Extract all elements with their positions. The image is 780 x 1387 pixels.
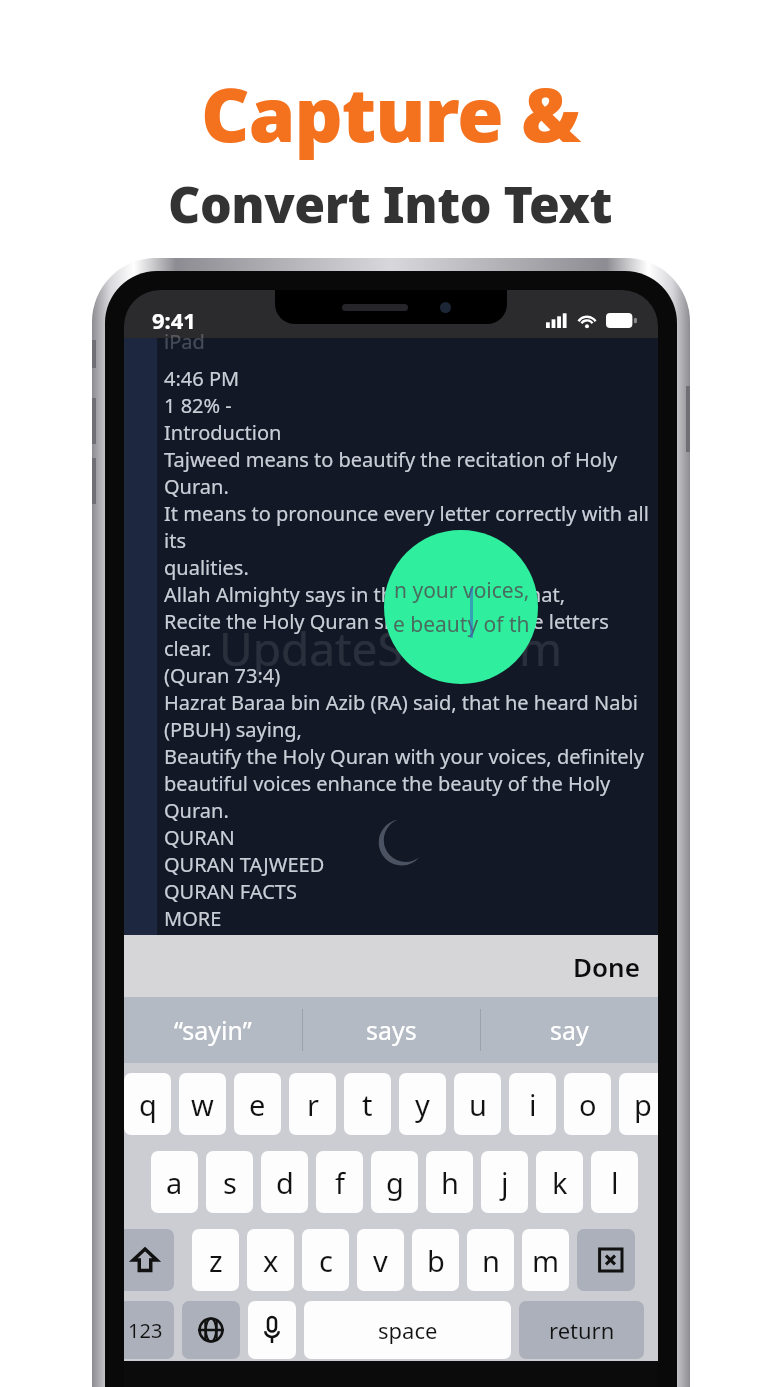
staticText: r bbox=[307, 1085, 319, 1124]
staticText: u bbox=[469, 1085, 487, 1124]
button[interactable]: q bbox=[124, 1073, 171, 1135]
staticText: Introduction bbox=[164, 419, 282, 446]
button[interactable]: l bbox=[591, 1151, 638, 1213]
staticText: s bbox=[223, 1163, 237, 1202]
staticText: say bbox=[550, 1013, 589, 1047]
button[interactable]: space bbox=[304, 1301, 511, 1359]
staticText: Allah Almighty says in the Holy Quran th… bbox=[164, 581, 565, 608]
staticText: qualities. bbox=[164, 554, 249, 581]
button[interactable]: z bbox=[192, 1229, 239, 1291]
staticText: “sayin” bbox=[174, 1013, 252, 1047]
button[interactable] bbox=[124, 1229, 174, 1291]
staticText: UpdateStar.com bbox=[219, 617, 563, 680]
staticText: (PBUH) saying, bbox=[164, 716, 302, 743]
staticText: n bbox=[482, 1241, 500, 1280]
staticText: 4:46 PM bbox=[164, 365, 240, 392]
staticText: It means to pronounce every letter corre… bbox=[164, 500, 649, 527]
staticText: c bbox=[319, 1241, 333, 1280]
staticText: o bbox=[579, 1085, 597, 1124]
staticText: its bbox=[164, 527, 186, 554]
staticText: Done bbox=[573, 949, 640, 984]
staticText: g bbox=[386, 1163, 404, 1202]
staticText: l bbox=[611, 1163, 619, 1202]
staticText: y bbox=[415, 1085, 430, 1124]
staticText: MORE bbox=[164, 905, 222, 932]
button[interactable]: return bbox=[519, 1301, 644, 1359]
staticText: 123 bbox=[128, 1317, 163, 1344]
staticText: w bbox=[191, 1085, 214, 1124]
staticText: h bbox=[441, 1163, 459, 1202]
staticText: x bbox=[263, 1241, 279, 1280]
button[interactable]: “sayin” bbox=[124, 997, 302, 1063]
staticText: (Quran 73:4) bbox=[164, 662, 281, 689]
staticText: Tajweed means to beautify the recitation… bbox=[164, 446, 618, 473]
staticText: z bbox=[209, 1241, 223, 1280]
staticText: Recite the Holy Quran slowly making the … bbox=[164, 608, 609, 635]
button[interactable]: 123 bbox=[124, 1301, 174, 1359]
staticText: m bbox=[532, 1241, 560, 1280]
staticText: i bbox=[529, 1085, 537, 1124]
staticText: j bbox=[501, 1163, 509, 1202]
staticText: clear. bbox=[164, 635, 212, 662]
button[interactable]: t bbox=[344, 1073, 391, 1135]
button[interactable]: says bbox=[303, 997, 480, 1063]
staticText: d bbox=[276, 1163, 294, 1202]
button[interactable]: a bbox=[151, 1151, 198, 1213]
staticText: iPad bbox=[164, 328, 205, 355]
button[interactable]: o bbox=[564, 1073, 611, 1135]
staticText: beautiful voices enhance the beauty of t… bbox=[164, 770, 611, 797]
button[interactable]: j bbox=[481, 1151, 528, 1213]
button[interactable]: x bbox=[247, 1229, 294, 1291]
staticText: QURAN TAJWEED bbox=[164, 851, 325, 878]
other: Text selection magnifier bbox=[384, 530, 538, 684]
staticText: e bbox=[249, 1085, 266, 1124]
staticText: f bbox=[335, 1163, 345, 1202]
staticText: 9:41 bbox=[152, 305, 196, 335]
staticText: 1 82% - bbox=[164, 392, 232, 419]
button[interactable]: u bbox=[454, 1073, 501, 1135]
button[interactable]: h bbox=[426, 1151, 473, 1213]
button[interactable]: i bbox=[509, 1073, 556, 1135]
button[interactable]: n bbox=[467, 1229, 514, 1291]
staticText: space bbox=[378, 1315, 438, 1345]
staticText: t bbox=[362, 1085, 373, 1124]
button[interactable]: d bbox=[261, 1151, 308, 1213]
staticText: Quran. bbox=[164, 797, 229, 824]
button[interactable]: Backspace bbox=[577, 1229, 635, 1291]
staticText: return bbox=[549, 1315, 615, 1345]
staticText: k bbox=[552, 1163, 568, 1202]
staticText: Beautify the Holy Quran with your voices… bbox=[164, 743, 644, 770]
staticText: Convert Into Text bbox=[168, 170, 612, 238]
staticText: v bbox=[373, 1241, 388, 1280]
staticText: says bbox=[366, 1013, 417, 1047]
staticText: b bbox=[427, 1241, 445, 1280]
button[interactable]: Done bbox=[555, 939, 658, 994]
button[interactable]: f bbox=[316, 1151, 363, 1213]
staticText: QURAN FACTS bbox=[164, 878, 297, 905]
staticText: QURAN bbox=[164, 824, 235, 851]
button[interactable]: Dictate bbox=[248, 1301, 296, 1359]
staticText: Hazrat Baraa bin Azib (RA) said, that he… bbox=[164, 689, 638, 716]
staticText: a bbox=[166, 1163, 183, 1202]
button[interactable]: v bbox=[357, 1229, 404, 1291]
button[interactable]: e bbox=[234, 1073, 281, 1135]
button[interactable]: w bbox=[179, 1073, 226, 1135]
staticText: Quran. bbox=[164, 473, 229, 500]
button[interactable]: k bbox=[536, 1151, 583, 1213]
button[interactable]: c bbox=[302, 1229, 349, 1291]
button[interactable]: b bbox=[412, 1229, 459, 1291]
staticText: e beauty of th bbox=[393, 610, 530, 639]
staticText: q bbox=[139, 1085, 157, 1124]
staticText: Capture & bbox=[201, 62, 580, 164]
button[interactable]: p bbox=[619, 1073, 658, 1135]
button[interactable]: s bbox=[206, 1151, 253, 1213]
button[interactable]: Switch language bbox=[182, 1301, 240, 1359]
button[interactable]: y bbox=[399, 1073, 446, 1135]
staticText: p bbox=[634, 1085, 652, 1124]
button[interactable]: g bbox=[371, 1151, 418, 1213]
button[interactable]: say bbox=[481, 997, 658, 1063]
staticText: n your voices, bbox=[394, 576, 530, 605]
button[interactable]: m bbox=[522, 1229, 569, 1291]
button[interactable]: r bbox=[289, 1073, 336, 1135]
